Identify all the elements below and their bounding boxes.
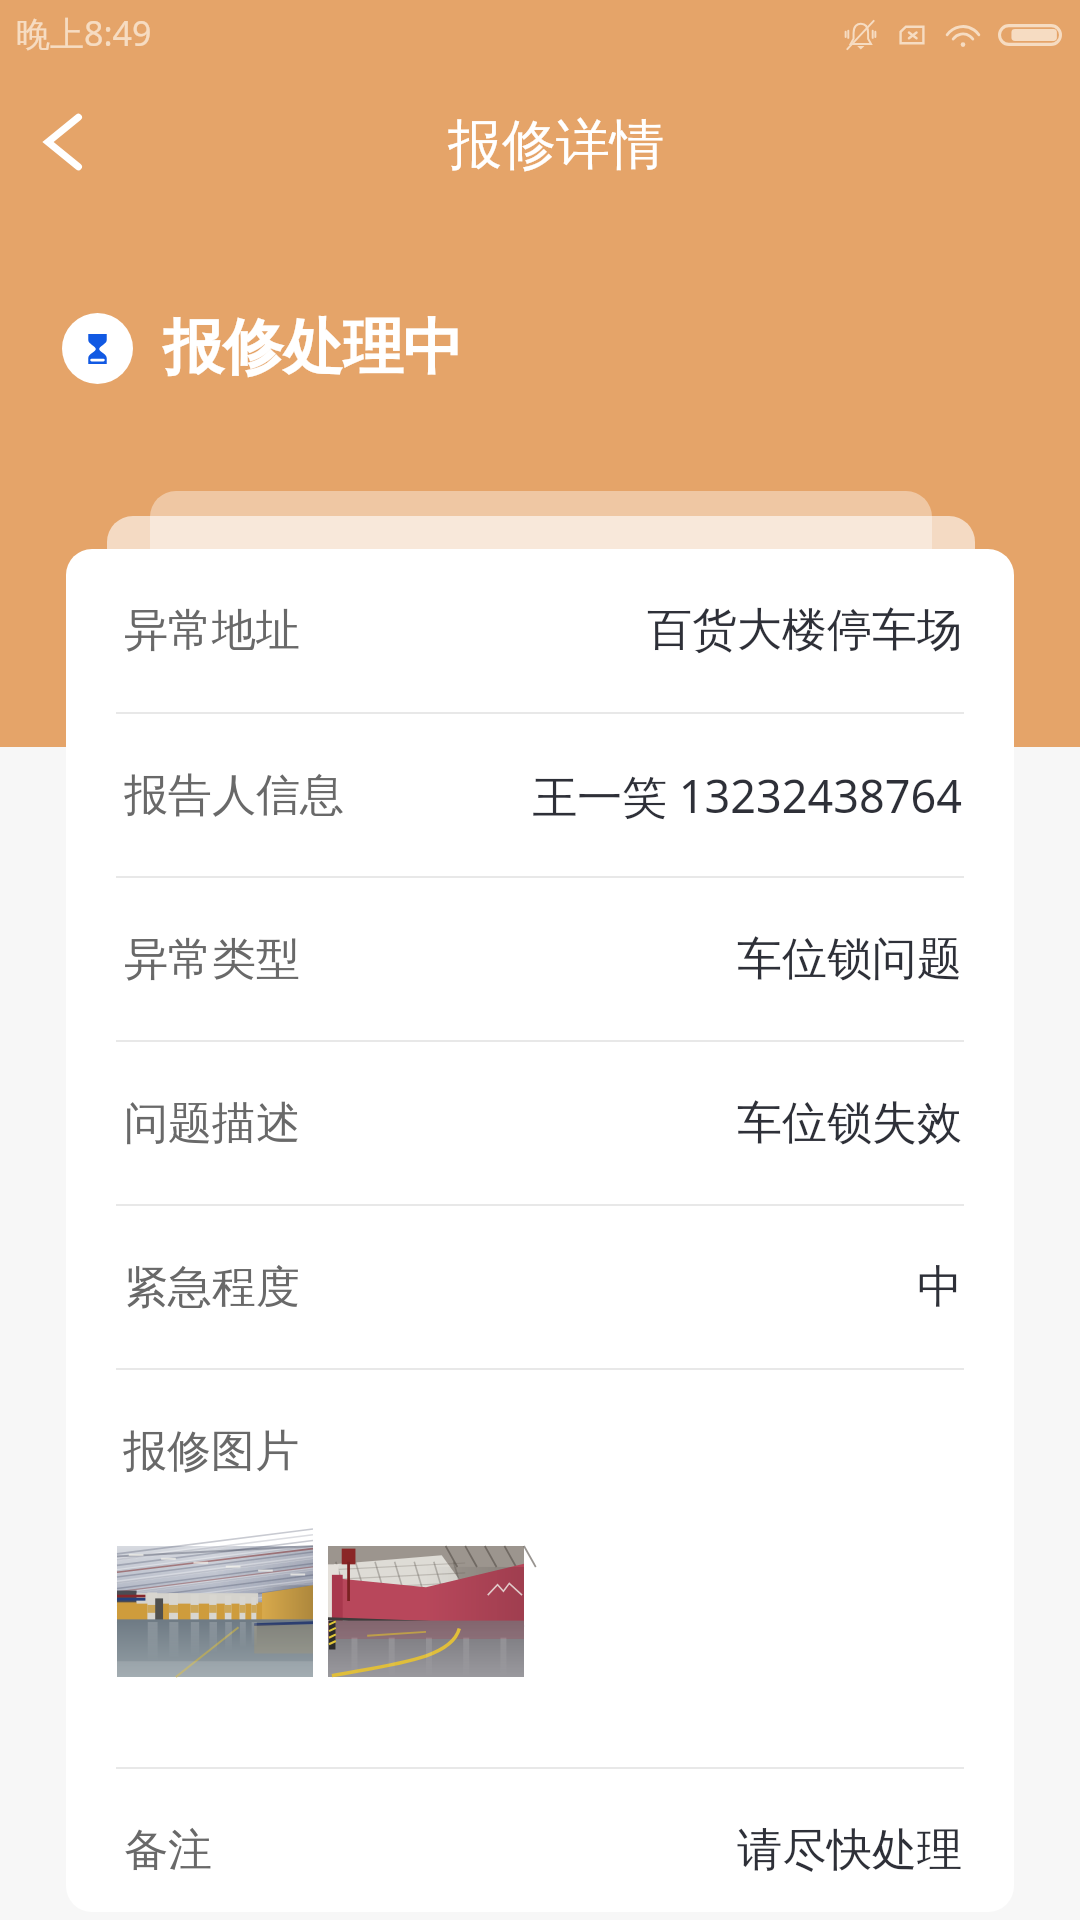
staticText: 异常类型 — [124, 932, 300, 987]
staticText: 百货大楼停车场 — [316, 602, 962, 659]
staticText: 报修图片 — [123, 1424, 299, 1479]
staticText: 车位锁失效 — [316, 1095, 962, 1152]
staticText: 问题描述 — [124, 1096, 300, 1151]
staticText: 报告人信息 — [124, 768, 344, 823]
staticText: 备注 — [124, 1823, 212, 1878]
button[interactable]: 报告人信息 — [66, 714, 1014, 876]
button[interactable]: 备注 — [66, 1789, 1014, 1912]
button[interactable]: Back — [0, 72, 120, 212]
staticText: 报修详情 — [448, 111, 664, 179]
button[interactable]: 异常类型 — [66, 878, 1014, 1040]
button[interactable]: 紧急程度 — [66, 1206, 1014, 1368]
staticText: 报修处理中 — [163, 310, 463, 386]
staticText: 紧急程度 — [124, 1260, 300, 1315]
button[interactable]: Photo 1 — [117, 1546, 313, 1677]
staticText: 请尽快处理 — [228, 1822, 962, 1879]
staticText: 中 — [316, 1259, 962, 1316]
button[interactable]: 问题描述 — [66, 1042, 1014, 1204]
staticText: 王一笑 13232438764 — [360, 765, 962, 826]
button[interactable]: Photo 2 — [328, 1546, 524, 1677]
staticText: 车位锁问题 — [316, 931, 962, 988]
button[interactable]: 异常地址 — [66, 549, 1014, 712]
staticText: 异常地址 — [124, 603, 300, 658]
button[interactable]: 报修处理中 — [62, 310, 463, 386]
staticText: 晚上8:49 — [16, 10, 152, 56]
